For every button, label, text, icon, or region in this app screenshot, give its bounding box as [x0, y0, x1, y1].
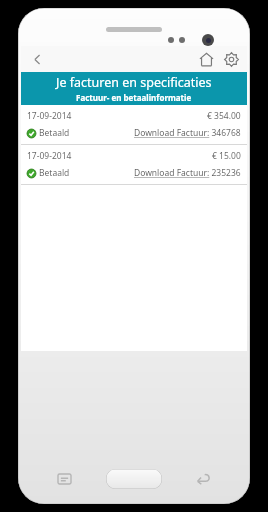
staticText: € 15.00 [212, 150, 241, 162]
button[interactable]: Settings [221, 49, 242, 70]
staticText: € 354.00 [207, 110, 241, 122]
staticText: Betaald [39, 127, 70, 139]
button[interactable]: Home [196, 49, 217, 70]
button[interactable]: Menu [58, 474, 71, 484]
button[interactable]: 17-09-2014 [21, 105, 247, 144]
button[interactable]: Home [106, 469, 162, 489]
button[interactable]: Back [27, 49, 47, 69]
staticText: Factuur- en betaalinformatie [76, 92, 192, 103]
button[interactable]: Download Factuur: 346768 [134, 127, 241, 139]
staticText: 17-09-2014 [27, 150, 72, 162]
staticText: Download Factuur: 235236 [134, 167, 241, 179]
button[interactable]: Back [196, 472, 210, 484]
staticText: Download Factuur: 346768 [134, 127, 241, 139]
staticText: Je facturen en specificaties [56, 74, 212, 91]
staticText: 17-09-2014 [27, 110, 72, 122]
staticText: Betaald [39, 167, 70, 179]
button[interactable]: Download Factuur: 235236 [134, 167, 241, 179]
button[interactable]: 17-09-2014 [21, 145, 247, 184]
